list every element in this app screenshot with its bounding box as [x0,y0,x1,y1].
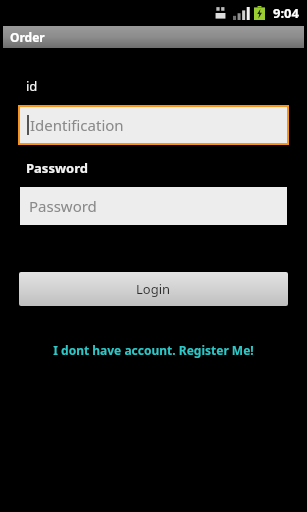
staticText: Identification [30,115,124,135]
button[interactable]: Login [19,272,288,306]
staticText: 9:04 [273,4,299,22]
staticText: Login [136,280,171,298]
button[interactable]: I dont have account. Register Me! [0,342,307,358]
staticText: Password [29,196,97,216]
button[interactable]: Password [20,187,287,225]
staticText: Order [10,29,45,45]
staticText: Password [26,159,88,177]
button[interactable]: Identification [20,107,287,143]
staticText: id [26,77,38,95]
staticText: I dont have account. Register Me! [53,342,254,358]
